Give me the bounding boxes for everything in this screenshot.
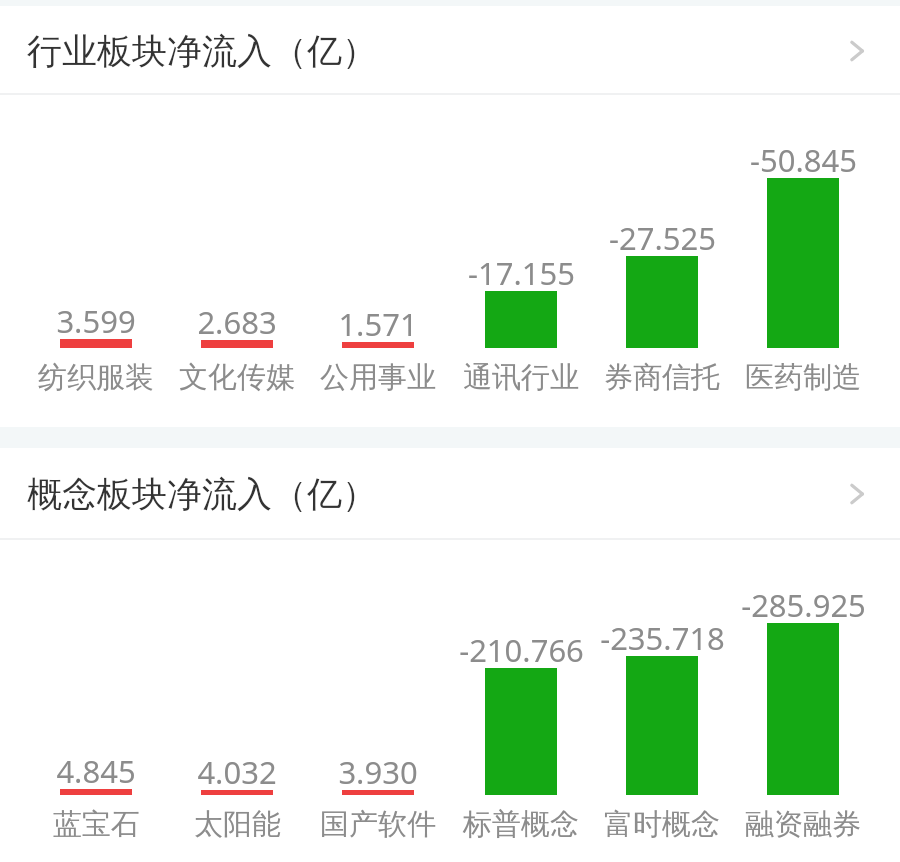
staticText: 行业板块净流入（亿） [27, 29, 377, 73]
staticText: 融资融券 [745, 806, 861, 843]
button[interactable]: 3.930 [298, 751, 458, 789]
staticText: 纺织服装 [38, 359, 154, 396]
button[interactable]: -17.155 [441, 252, 601, 290]
button[interactable]: 2.683 [157, 301, 317, 339]
button[interactable]: -285.925 [723, 584, 883, 622]
button[interactable]: 4.845 [16, 750, 176, 788]
staticText: -285.925 [741, 584, 866, 622]
button[interactable]: -235.718 [582, 617, 742, 655]
staticText: 1.571 [338, 303, 418, 341]
button[interactable]: 标普概念 [441, 806, 601, 846]
staticText: 蓝宝石 [53, 806, 140, 843]
button[interactable]: -50.845 [723, 139, 883, 177]
staticText: 券商信托 [604, 359, 720, 396]
staticText: -50.845 [750, 139, 857, 177]
button[interactable]: 1.571 [298, 303, 458, 341]
staticText: 国产软件 [320, 806, 436, 843]
staticText: 公用事业 [320, 359, 436, 396]
staticText: -27.525 [609, 217, 716, 255]
other: 查看更多 [840, 477, 874, 511]
button[interactable]: 概念板块净流入（亿） [0, 448, 900, 540]
staticText: 4.032 [197, 751, 277, 789]
button[interactable]: 太阳能 [157, 806, 317, 846]
staticText: -235.718 [600, 617, 725, 655]
button[interactable]: 4.032 [157, 751, 317, 789]
other: 查看更多 [840, 34, 874, 68]
staticText: 概念板块净流入（亿） [27, 472, 377, 516]
button[interactable]: 医药制造 [723, 359, 883, 399]
staticText: 4.845 [56, 750, 136, 788]
staticText: 文化传媒 [179, 359, 295, 396]
button[interactable]: 文化传媒 [157, 359, 317, 399]
button[interactable]: 融资融券 [723, 806, 883, 846]
button[interactable]: 券商信托 [582, 359, 742, 399]
button[interactable]: 公用事业 [298, 359, 458, 399]
staticText: 医药制造 [745, 359, 861, 396]
button[interactable]: 富时概念 [582, 806, 742, 846]
staticText: 标普概念 [463, 806, 579, 843]
staticText: 3.599 [56, 300, 136, 338]
button[interactable]: 通讯行业 [441, 359, 601, 399]
staticText: 3.930 [338, 751, 418, 789]
staticText: 通讯行业 [463, 359, 579, 396]
button[interactable]: 纺织服装 [16, 359, 176, 399]
button[interactable]: 行业板块净流入（亿） [0, 6, 900, 95]
button[interactable]: -27.525 [582, 217, 742, 255]
staticText: 富时概念 [604, 806, 720, 843]
button[interactable]: 蓝宝石 [16, 806, 176, 846]
staticText: 太阳能 [194, 806, 281, 843]
button[interactable]: 国产软件 [298, 806, 458, 846]
staticText: -210.766 [459, 629, 584, 667]
button[interactable]: -210.766 [441, 629, 601, 667]
staticText: -17.155 [468, 252, 575, 290]
button[interactable]: 3.599 [16, 300, 176, 338]
staticText: 2.683 [197, 301, 277, 339]
